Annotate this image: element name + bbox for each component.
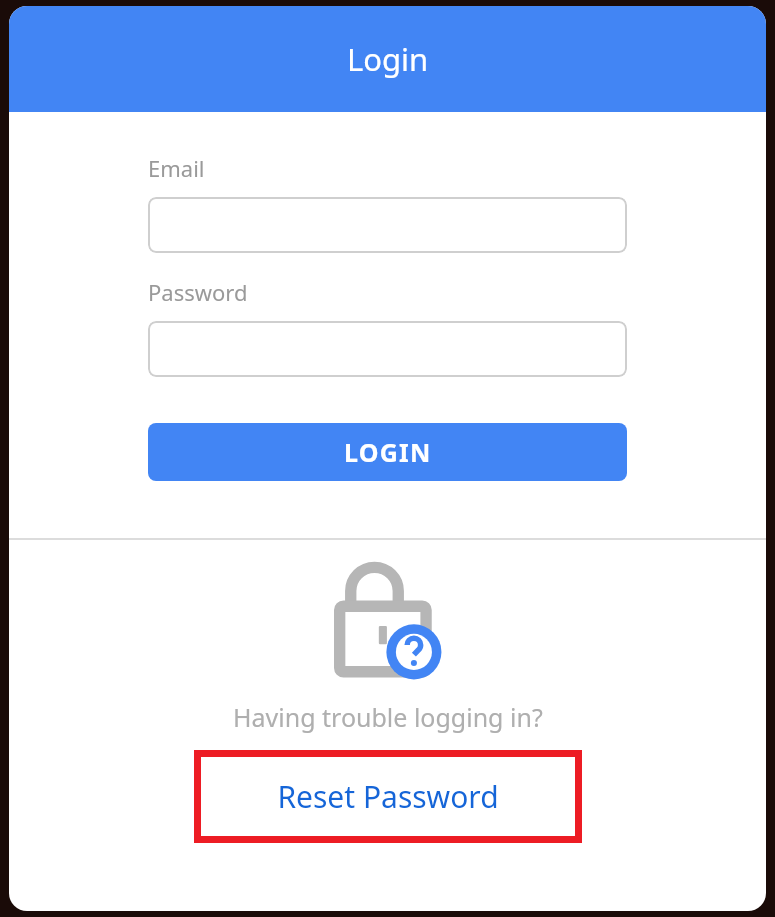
button[interactable]: Reset Password (194, 750, 582, 843)
button[interactable] (148, 321, 627, 377)
staticText: Login (347, 38, 429, 80)
staticText: Email (148, 153, 205, 183)
staticText: Password (148, 277, 248, 307)
staticText: LOGIN (344, 435, 432, 469)
other: Login help (334, 562, 442, 680)
staticText: Having trouble logging in? (233, 700, 543, 734)
staticText: Reset Password (277, 776, 499, 817)
button[interactable]: LOGIN (148, 423, 627, 481)
button[interactable] (148, 197, 627, 253)
